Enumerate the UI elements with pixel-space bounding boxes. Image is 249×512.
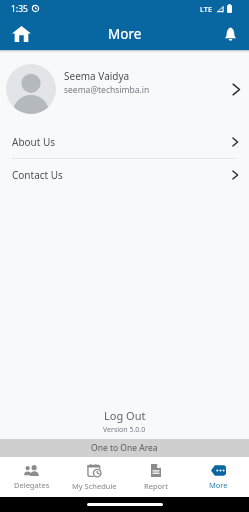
staticText: Delegates (14, 480, 50, 490)
staticText: More (209, 480, 228, 490)
button[interactable]: Delegates (0, 457, 63, 497)
staticText: Version 5.0.0 (103, 425, 146, 435)
staticText: Log Out (104, 408, 146, 423)
staticText: One to One Area (91, 442, 158, 454)
staticText: About Us (12, 135, 56, 149)
button[interactable]: Contact Us (0, 159, 249, 191)
button[interactable]: Log Out (0, 408, 249, 435)
button[interactable]: Report (125, 457, 187, 497)
staticText: Report (144, 481, 168, 491)
button[interactable]: More (187, 457, 249, 497)
button[interactable]: Seema Vaidya (0, 53, 249, 126)
button[interactable]: Notifications (214, 18, 246, 49)
staticText: 1:35 (11, 3, 28, 15)
staticText: Seema Vaidya (64, 69, 130, 83)
button[interactable]: Home (3, 18, 40, 49)
button[interactable]: My Schedule (63, 457, 125, 497)
staticText: Contact Us (12, 168, 63, 182)
button[interactable]: About Us (0, 126, 249, 158)
staticText: More (108, 25, 142, 43)
staticText: My Schedule (72, 481, 117, 491)
staticText: seema@techsimba.in (64, 84, 150, 96)
staticText: LTE (200, 4, 213, 14)
